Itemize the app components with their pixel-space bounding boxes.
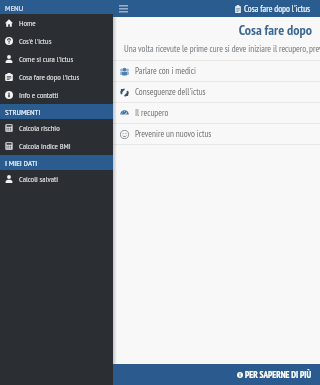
staticText: Una volta ricevute le prime cure si deve… <box>124 43 320 55</box>
button[interactable]: Conseguenze dell'ictus <box>113 82 320 102</box>
button[interactable]: Prevenire un nuovo ictus <box>113 124 320 144</box>
staticText: PER SAPERNE DI PIÙ <box>245 369 312 381</box>
button[interactable]: PER SAPERNE DI PIÙ <box>237 369 320 381</box>
staticText: Calcola rischio <box>19 123 60 134</box>
staticText: Parlare con i medici <box>135 65 196 77</box>
staticText: Info e contatti <box>19 90 59 101</box>
button[interactable]: Come si cura l'ictus <box>0 50 113 68</box>
staticText: Come si cura l'ictus <box>19 54 74 65</box>
button[interactable]: Home <box>0 14 113 32</box>
button[interactable]: Il recupero <box>113 103 320 123</box>
button[interactable]: Calcoli salvati <box>0 170 113 188</box>
button[interactable]: Cosa fare dopo l'ictus <box>0 68 113 86</box>
button[interactable]: Cos'è l'ictus <box>0 32 113 50</box>
button[interactable]: Info e contatti <box>0 86 113 104</box>
staticText: Calcoli salvati <box>19 174 58 185</box>
staticText: Conseguenze dell'ictus <box>135 86 206 98</box>
staticText: Cos'è l'ictus <box>19 36 52 47</box>
button[interactable]: Cosa fare dopo l'ictus <box>235 3 320 15</box>
staticText: Calcola indice BMI <box>19 141 71 152</box>
button[interactable]: Calcola indice BMI <box>0 137 113 155</box>
staticText: STRUMENTI <box>5 106 41 117</box>
staticText: Cosa fare dopo l'ictus <box>19 72 80 83</box>
staticText: Prevenire un nuovo ictus <box>135 128 212 140</box>
button[interactable]: Parlare con i medici <box>113 61 320 81</box>
staticText: Il recupero <box>135 107 169 119</box>
button[interactable]: Open navigation menu <box>113 0 133 17</box>
staticText: I MIEI DATI <box>5 157 38 168</box>
button[interactable]: Calcola rischio <box>0 119 113 137</box>
staticText: MENU <box>5 2 24 13</box>
staticText: Cosa fare dopo l'ictus <box>244 3 311 15</box>
staticText: Home <box>19 18 36 29</box>
staticText: Cosa fare dopo <box>113 21 312 39</box>
